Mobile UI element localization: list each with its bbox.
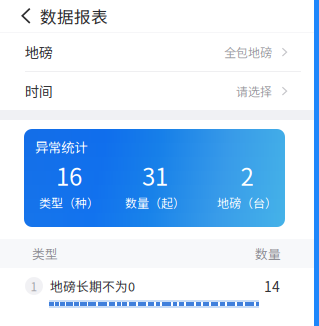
staticText: 地磅（台）: [217, 194, 277, 211]
staticText: 请选择: [236, 82, 272, 100]
staticText: 数据报表: [40, 4, 108, 28]
staticText: 14: [264, 276, 280, 296]
staticText: 31: [142, 158, 168, 193]
staticText: 数量（起）: [125, 194, 185, 211]
staticText: 数量: [255, 244, 281, 263]
staticText: 16: [56, 158, 82, 193]
staticText: 类型: [32, 244, 58, 263]
staticText: 类型（种）: [39, 194, 99, 211]
staticText: 地磅: [25, 42, 53, 62]
staticText: 时间: [25, 81, 53, 101]
button[interactable]: 时间: [0, 72, 319, 110]
button[interactable]: Back: [0, 0, 118, 32]
button[interactable]: 1: [0, 268, 319, 304]
staticText: 全包地磅: [224, 43, 272, 61]
staticText: 2: [240, 158, 253, 193]
button[interactable]: 地磅: [0, 33, 319, 71]
staticText: 异常统计: [35, 137, 87, 156]
staticText: 1: [30, 277, 37, 295]
staticText: 地磅长期不为0: [50, 277, 135, 295]
